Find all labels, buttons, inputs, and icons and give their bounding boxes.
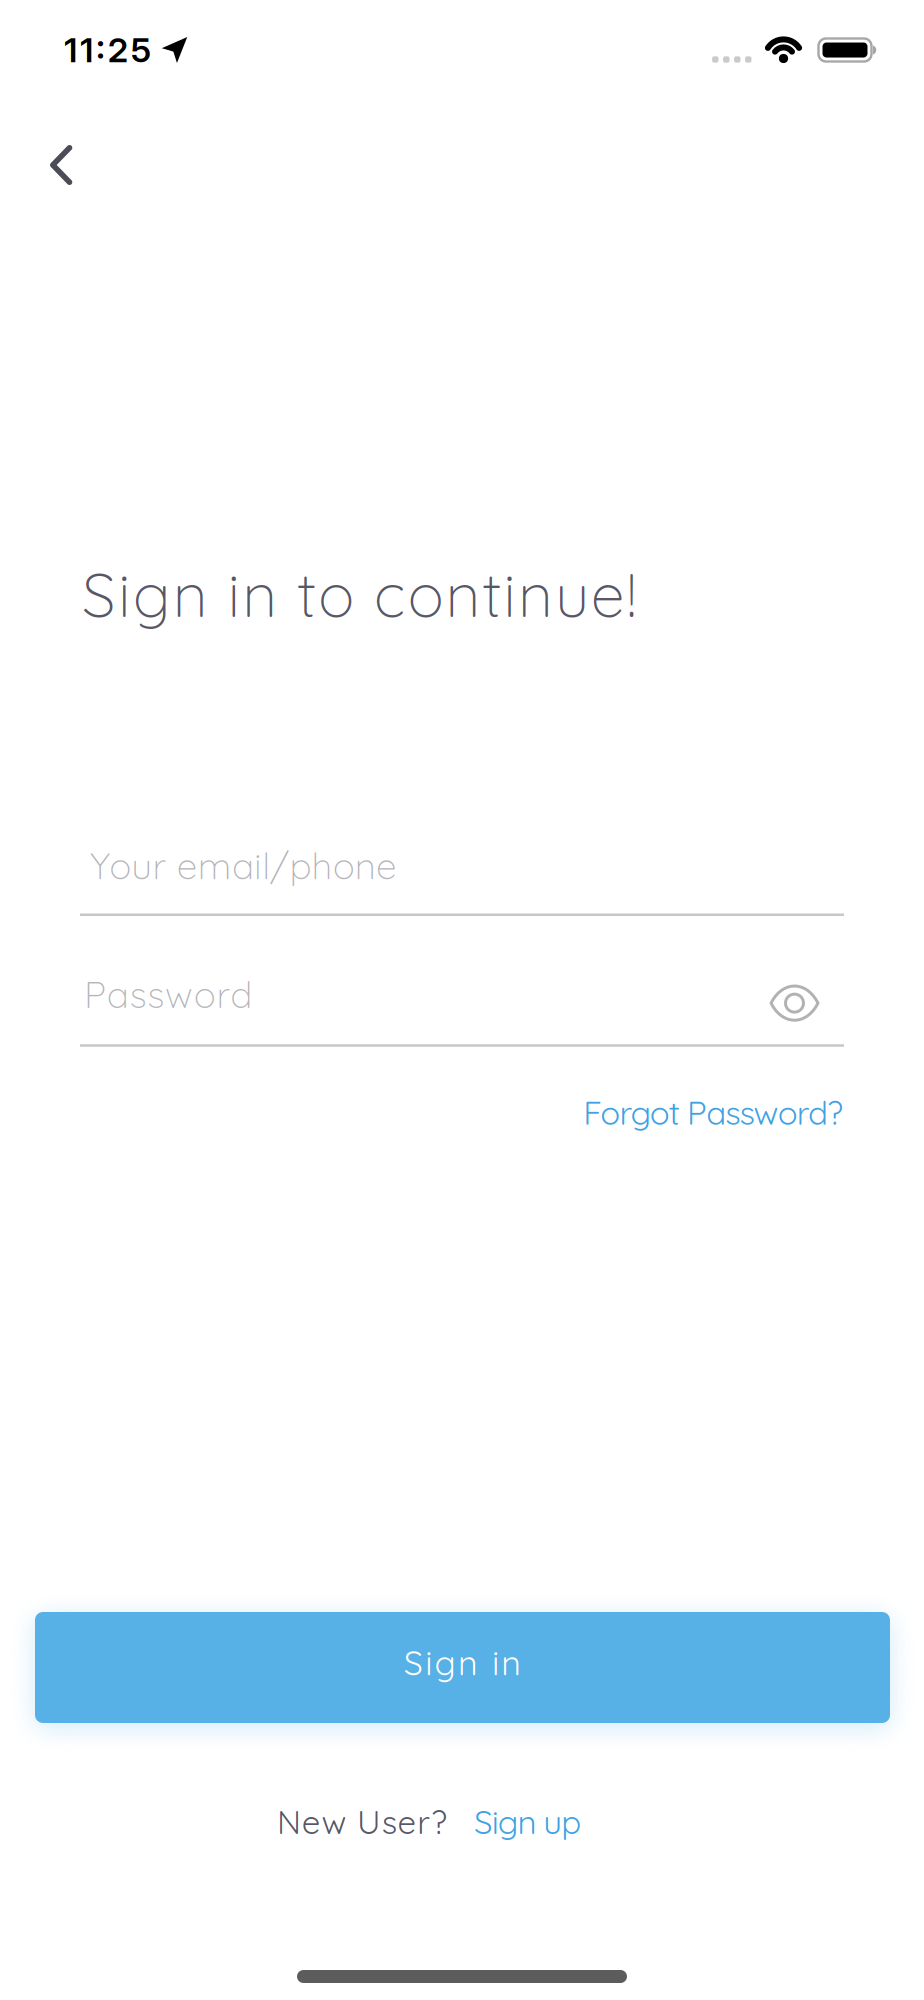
staticText: 11:25: [64, 29, 151, 70]
staticText: New User?: [277, 1801, 447, 1842]
button[interactable]: Your email/phone: [80, 842, 844, 916]
button[interactable]: Password: [80, 971, 844, 1047]
staticText: Sign up: [474, 1801, 581, 1842]
button[interactable]: Sign in: [35, 1612, 890, 1723]
button[interactable]: Sign up: [447, 1801, 581, 1842]
staticText: Sign in: [404, 1641, 521, 1684]
staticText: Forgot Password?: [583, 1092, 843, 1133]
staticText: Sign in to continue!: [82, 556, 637, 632]
button[interactable]: Forgot Password?: [583, 1092, 843, 1133]
button[interactable]: Back: [0, 100, 72, 185]
staticText: Password: [84, 971, 252, 1017]
button[interactable]: Show password: [771, 977, 818, 1012]
staticText: Your email/phone: [90, 842, 397, 888]
